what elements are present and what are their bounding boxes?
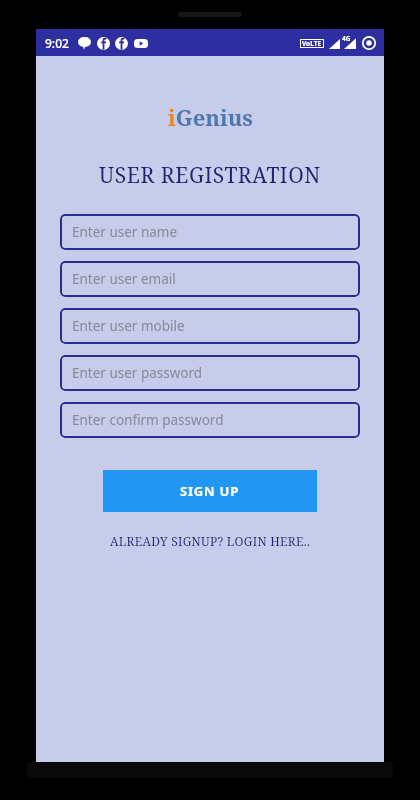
button[interactable]: SIGN UP <box>103 470 317 512</box>
button[interactable]: Enter user password <box>60 355 360 391</box>
staticText: VoLTE <box>302 39 322 48</box>
staticText: Enter user password <box>72 364 203 382</box>
staticText: Enter user mobile <box>72 317 185 335</box>
button[interactable]: Enter confirm password <box>60 402 360 438</box>
staticText: Enter user name <box>72 223 178 241</box>
staticText: SIGN UP <box>180 482 240 500</box>
staticText: 9:02 <box>45 35 69 51</box>
staticText: ALREADY SIGNUP? LOGIN HERE.. <box>110 533 311 549</box>
button[interactable]: ALREADY SIGNUP? LOGIN HERE.. <box>106 529 315 553</box>
button[interactable]: Enter user email <box>60 261 360 297</box>
button[interactable]: Enter user name <box>60 214 360 250</box>
staticText: USER REGISTRATION <box>99 161 321 190</box>
button[interactable]: Enter user mobile <box>60 308 360 344</box>
staticText: iGenius <box>168 102 253 132</box>
staticText: Enter user email <box>72 270 176 288</box>
staticText: Enter confirm password <box>72 411 224 429</box>
staticText: 4G <box>342 34 351 43</box>
